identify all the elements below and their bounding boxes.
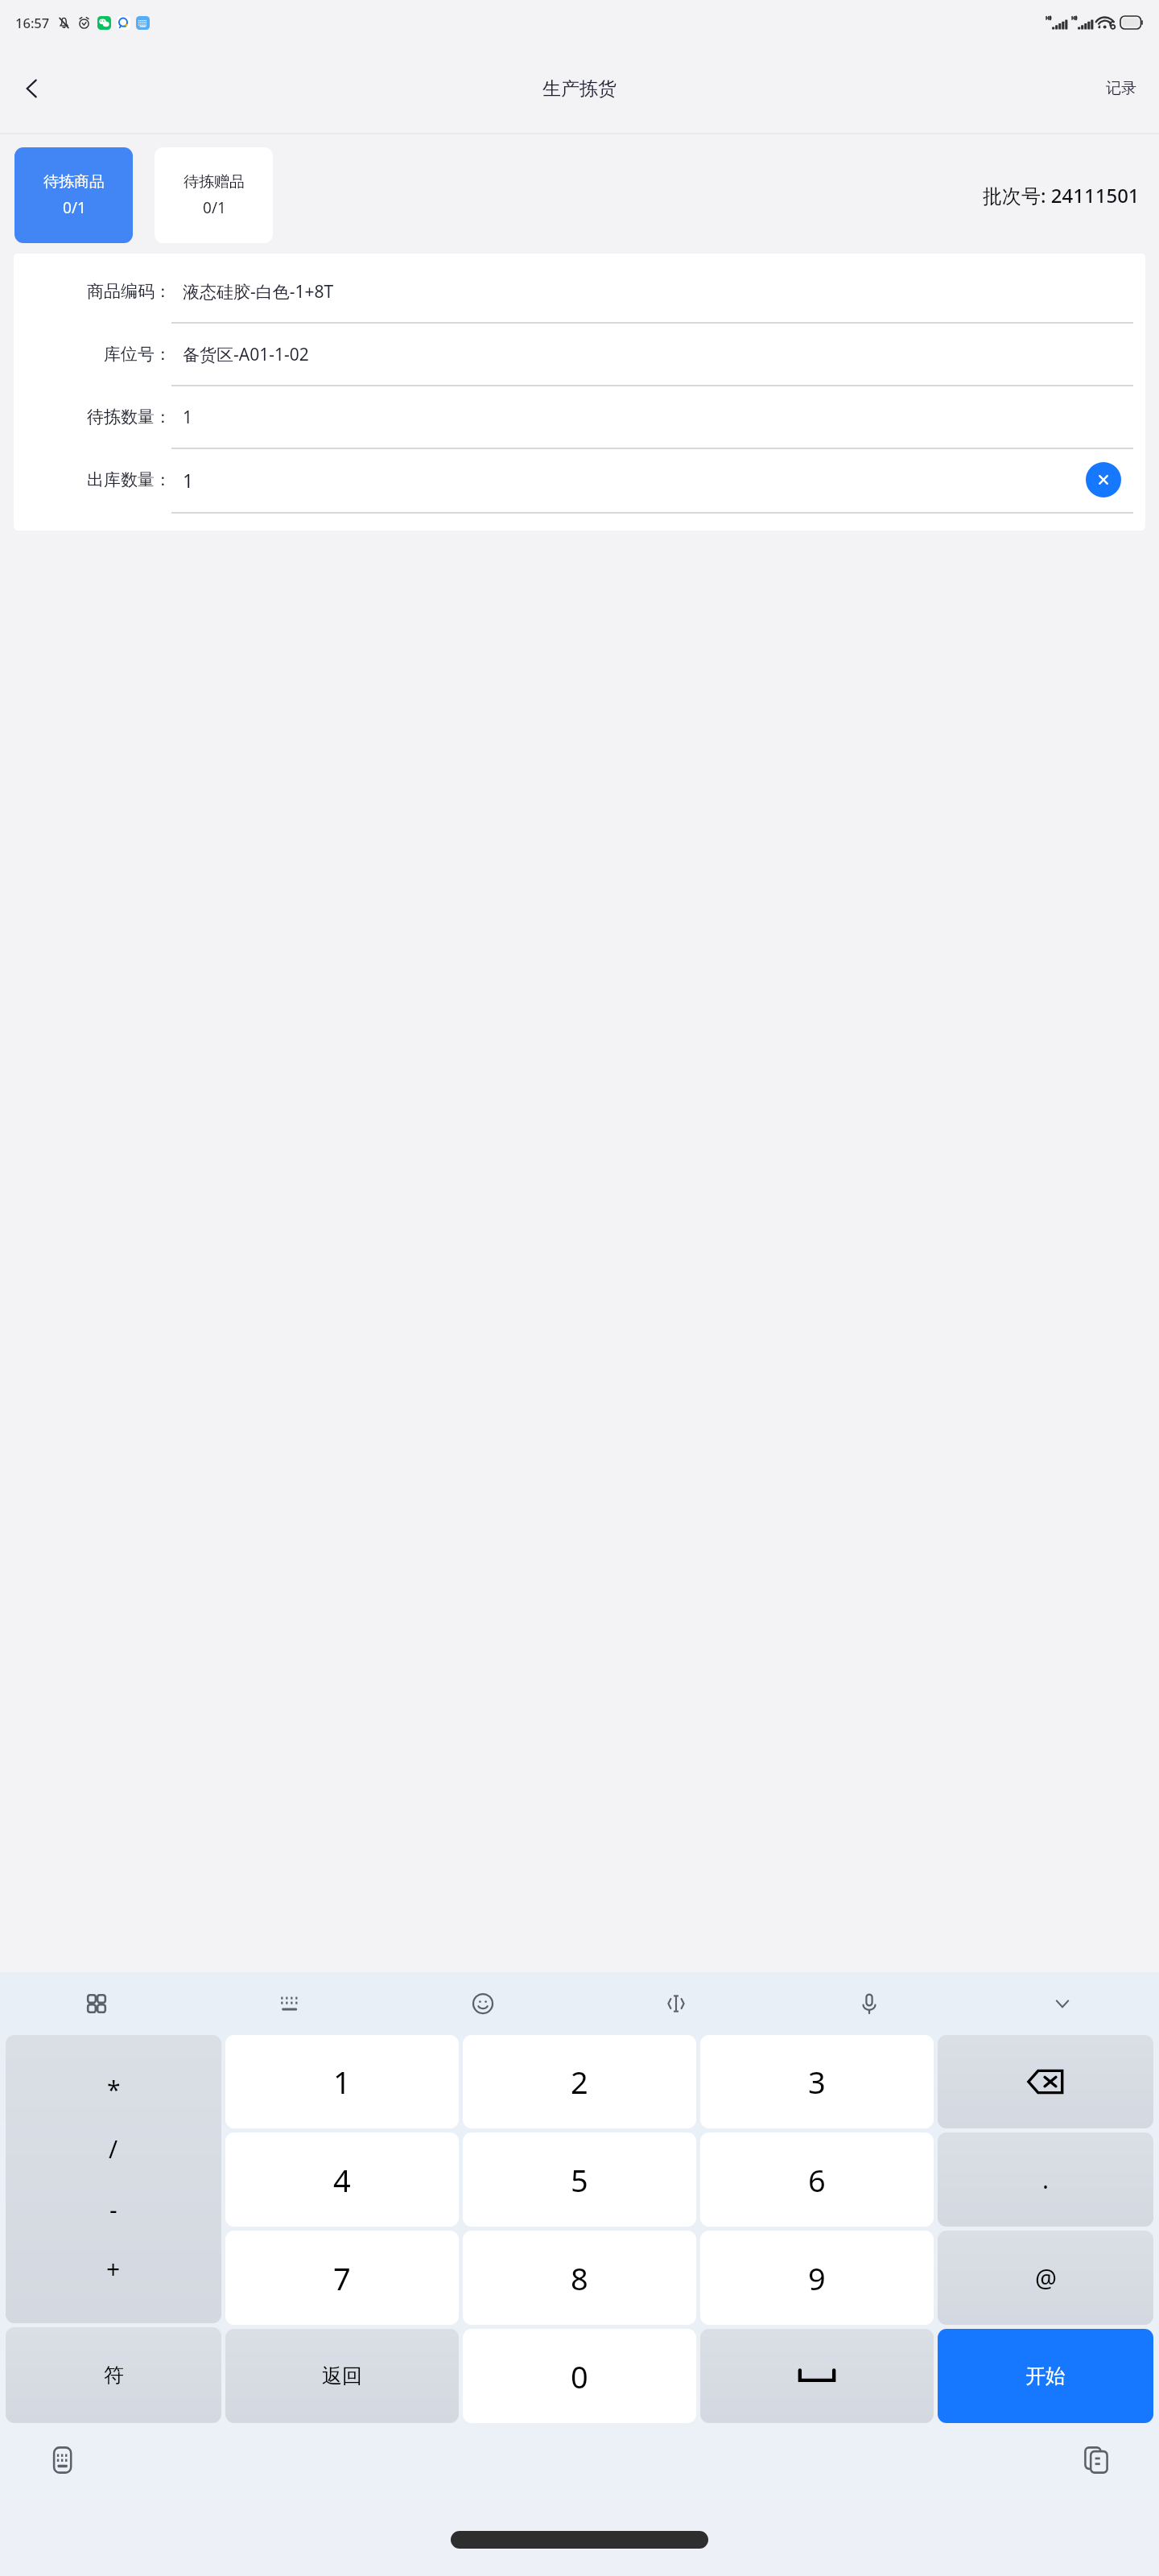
staticText: - [109,2193,118,2226]
button[interactable]: Backspace [938,2035,1153,2128]
staticText: 16:57 [15,14,50,31]
button[interactable]: . [938,2132,1153,2227]
staticText: 库位号： [104,344,171,365]
button[interactable]: 4 [225,2132,459,2227]
staticText: 8 [571,2257,588,2299]
staticText: 6 [808,2159,826,2201]
button[interactable]: 2 [463,2035,696,2128]
button[interactable]: Space [700,2329,934,2423]
button[interactable]: * [6,2035,221,2323]
button[interactable]: Hide keyboard [966,1972,1159,2035]
button[interactable]: 待拣赠品 [155,147,273,243]
staticText: 4 [333,2159,351,2201]
staticText: 记录 [1106,79,1136,98]
staticText: 商品编码： [87,281,171,302]
button[interactable]: 9 [700,2231,934,2325]
button[interactable]: 记录 [1096,71,1146,106]
staticText: 3 [808,2061,826,2103]
staticText: 待拣数量： [87,407,171,427]
staticText: 0 [571,2355,588,2397]
staticText: 9 [808,2257,826,2299]
button[interactable]: Switch keyboard [37,2434,89,2486]
button[interactable]: Voice input [773,1972,966,2035]
button[interactable]: Emoji [386,1972,579,2035]
button[interactable]: Clipboard [1070,2434,1122,2486]
button[interactable]: Text edit [579,1972,773,2035]
button[interactable]: 6 [700,2132,934,2227]
staticText: 0/1 [63,197,86,218]
button[interactable]: 5 [463,2132,696,2227]
staticText: 开始 [1025,2363,1066,2388]
staticText: 1 [183,468,194,493]
staticText: / [109,2132,118,2165]
staticText: 生产拣货 [542,77,617,101]
staticText: 出库数量： [87,469,171,490]
staticText: @ [1035,2261,1057,2294]
staticText: 待拣商品 [43,172,105,192]
button[interactable]: 待拣商品 [14,147,133,243]
button[interactable]: Clear [1086,462,1121,497]
staticText: 备货区-A01-1-02 [183,343,309,366]
button[interactable]: 7 [225,2231,459,2325]
staticText: 符 [104,2363,124,2388]
staticText: 5 [571,2159,588,2201]
staticText: 返回 [322,2363,362,2388]
button[interactable]: 0 [463,2329,696,2423]
button[interactable]: @ [938,2231,1153,2325]
button[interactable]: 符 [6,2327,221,2423]
staticText: 1 [183,406,193,429]
button[interactable]: 8 [463,2231,696,2325]
button[interactable]: 开始 [938,2329,1153,2423]
staticText: 0/1 [203,197,226,218]
button[interactable]: 返回 [225,2329,459,2423]
button[interactable]: 3 [700,2035,934,2128]
button[interactable]: Keyboard layout [193,1972,386,2035]
staticText: 1 [333,2061,351,2103]
staticText: 待拣赠品 [184,172,245,192]
button[interactable]: 1 [225,2035,459,2128]
staticText: 液态硅胶-白色-1+8T [183,280,334,303]
staticText: 批次号: 24111501 [983,182,1140,208]
button[interactable]: Back [6,63,58,114]
button[interactable]: Apps [0,1972,193,2035]
staticText: + [106,2252,121,2285]
staticText: 7 [333,2257,351,2299]
staticText: 2 [571,2061,588,2103]
staticText: . [1042,2163,1050,2196]
staticText: * [107,2073,121,2106]
